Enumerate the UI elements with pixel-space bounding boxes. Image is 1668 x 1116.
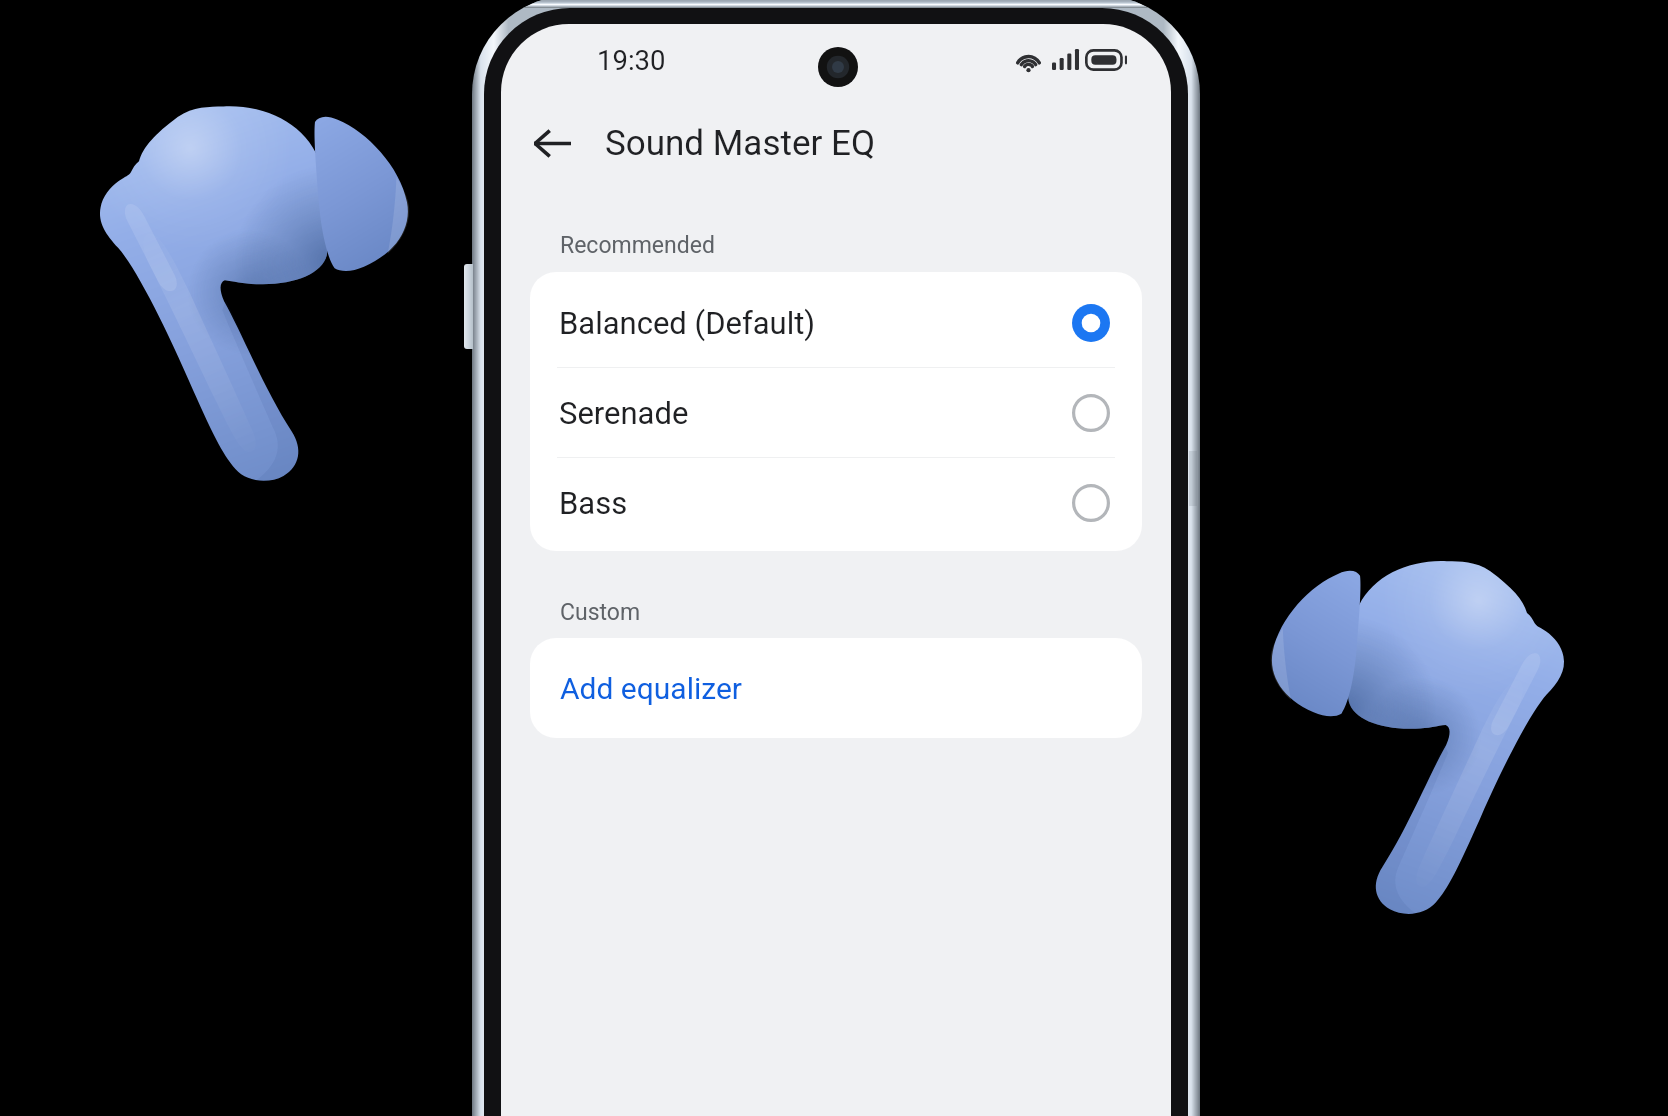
staticText: Balanced (Default) (559, 305, 816, 341)
staticText: 19:30 (597, 44, 666, 76)
staticText: Recommended (560, 232, 715, 259)
staticText: Serenade (559, 395, 689, 431)
staticText: Custom (560, 599, 641, 626)
button[interactable]: Serenade (530, 368, 1142, 457)
staticText: Add equalizer (560, 671, 742, 706)
button[interactable]: Balanced (Default) (530, 278, 1142, 367)
button[interactable]: Add equalizer (530, 638, 1142, 738)
button[interactable]: Bass (530, 458, 1142, 548)
button[interactable]: Back (524, 115, 580, 171)
staticText: Bass (559, 485, 628, 521)
staticText: Sound Master EQ (605, 123, 875, 164)
